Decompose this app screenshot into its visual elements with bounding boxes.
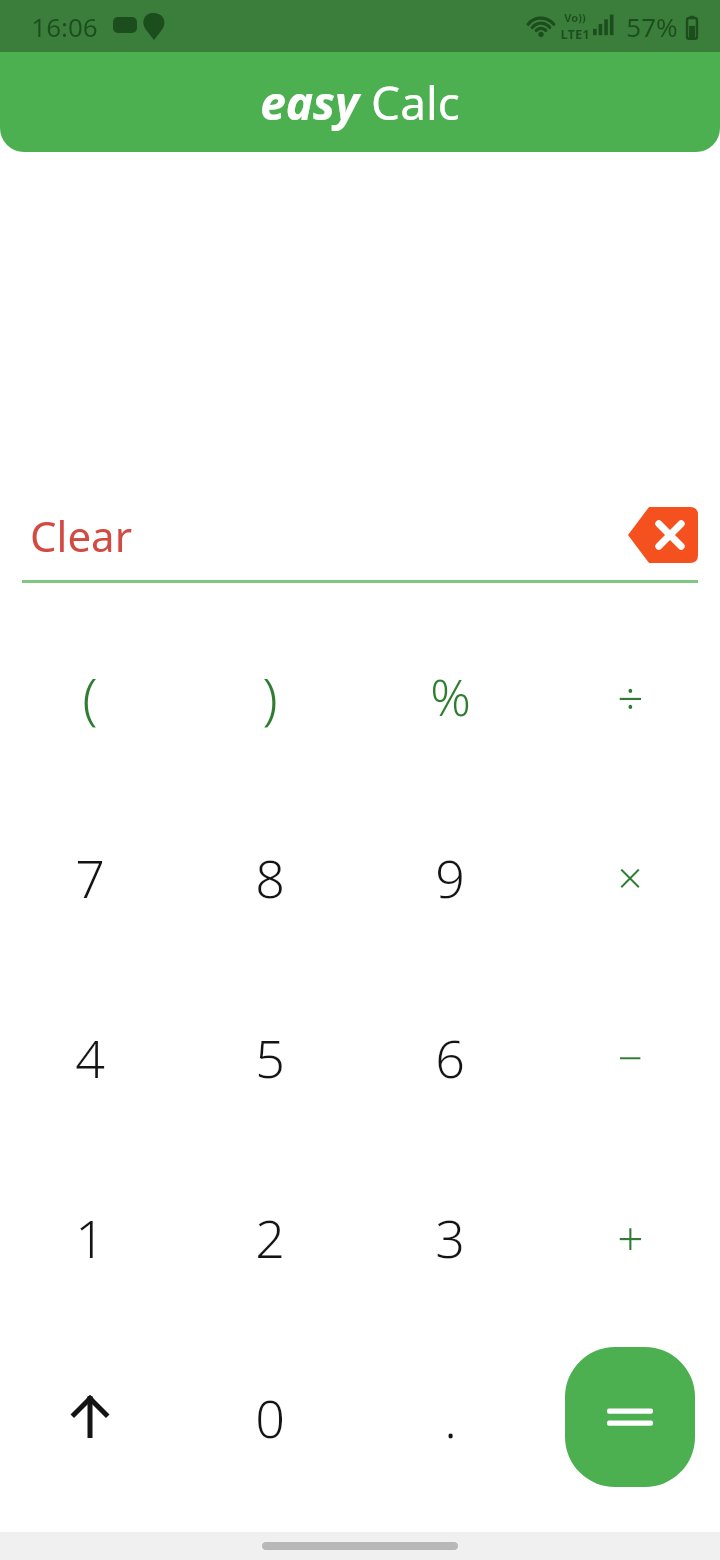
button[interactable]: ( [30,637,150,757]
staticText: Clear [30,507,132,564]
button[interactable]: Clear [22,501,140,570]
button[interactable]: − [570,997,690,1117]
button[interactable] [565,1347,695,1487]
staticText: . [444,1382,457,1453]
staticText: 5 [255,1022,285,1093]
button[interactable]: % [390,637,510,757]
button[interactable]: Move up [38,1365,142,1469]
button[interactable]: × [570,817,690,937]
staticText: Calc [371,71,460,134]
staticText: 7 [75,842,105,913]
button[interactable]: Backspace [628,507,698,563]
button[interactable]: . [390,1357,510,1477]
staticText: 3 [435,1202,465,1273]
staticText: 16:06 [31,9,98,44]
staticText: ( [82,659,98,735]
staticText: 57% [626,9,678,44]
staticText: easy [260,71,359,134]
staticText: ÷ [617,666,644,729]
staticText: + [617,1206,644,1269]
button[interactable]: + [570,1177,690,1297]
staticText: ) [262,659,278,735]
button[interactable]: 7 [30,817,150,937]
button[interactable]: 0 [210,1357,330,1477]
staticText: 6 [435,1022,465,1093]
staticText: × [617,847,643,907]
button[interactable]: 6 [390,997,510,1117]
button[interactable]: 5 [210,997,330,1117]
staticText: − [617,1027,643,1087]
button[interactable]: 2 [210,1177,330,1297]
staticText: % [430,663,471,731]
button[interactable]: 3 [390,1177,510,1297]
button[interactable]: 4 [30,997,150,1117]
button[interactable]: 9 [390,817,510,937]
button[interactable]: ÷ [570,637,690,757]
staticText: LTE1 [560,25,590,43]
staticText: 8 [255,842,285,913]
button[interactable]: ) [210,637,330,757]
button[interactable]: 1 [30,1177,150,1297]
staticText: 0 [255,1382,285,1453]
staticText: Vo)) [564,10,586,25]
staticText: 4 [75,1022,105,1093]
staticText: 1 [75,1202,105,1273]
staticText: 2 [255,1202,285,1273]
button[interactable]: 8 [210,817,330,937]
staticText: 9 [435,842,465,913]
